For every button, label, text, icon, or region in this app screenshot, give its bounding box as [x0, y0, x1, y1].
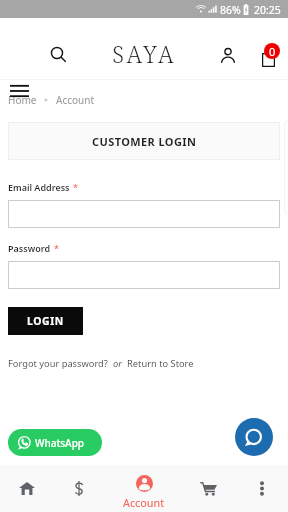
staticText: Account — [123, 495, 165, 510]
staticText: 86% — [220, 3, 241, 17]
button[interactable]: Menu — [10, 84, 29, 98]
button[interactable] — [8, 261, 280, 289]
staticText: Account — [56, 93, 95, 107]
staticText: Email Address — [8, 181, 70, 193]
button[interactable]: Account — [115, 465, 172, 512]
staticText: Home — [8, 93, 37, 107]
staticText: LOGIN — [27, 314, 64, 328]
staticText: SAYA — [112, 38, 177, 69]
staticText: 20:25 — [254, 3, 281, 17]
button[interactable]: Open chat — [235, 418, 273, 456]
button[interactable]: Forgot your password? — [8, 357, 108, 370]
button[interactable]: Account — [216, 43, 240, 67]
button[interactable]: WhatsApp — [8, 429, 102, 456]
button[interactable]: Return to Store — [127, 357, 194, 370]
staticText: * — [73, 181, 78, 193]
staticText: 0 — [269, 44, 276, 59]
button[interactable]: Home — [0, 465, 53, 512]
staticText: WhatsApp — [35, 436, 85, 450]
staticText: * — [54, 242, 59, 254]
button[interactable]: Cart — [181, 465, 236, 512]
staticText: CUSTOMER LOGIN — [92, 134, 197, 149]
button[interactable]: Search — [46, 42, 70, 66]
button[interactable]: Cart — [258, 42, 284, 68]
button[interactable]: Offers — [52, 465, 105, 512]
staticText: or — [113, 357, 122, 370]
button[interactable]: More — [234, 465, 288, 512]
button[interactable] — [8, 200, 280, 228]
button[interactable]: LOGIN — [8, 307, 83, 335]
staticText: Password — [8, 242, 51, 254]
